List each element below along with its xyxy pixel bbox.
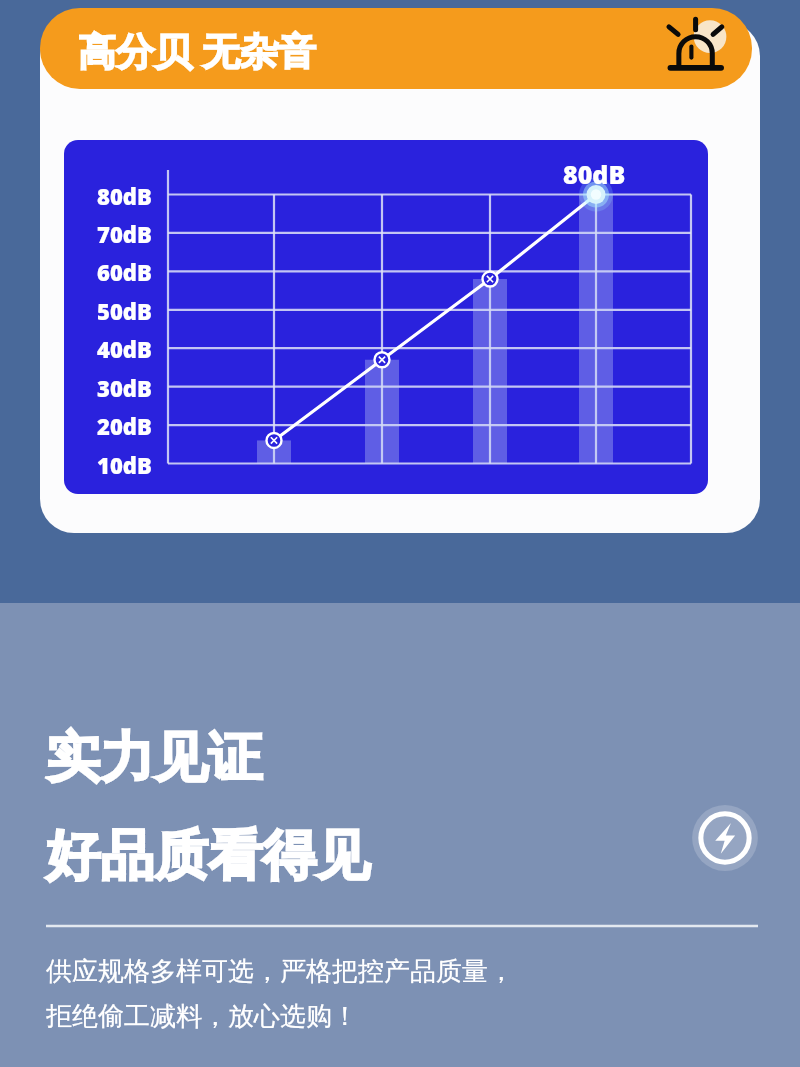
- staticText: 供应规格多样可选，严格把控产品质量，: [46, 955, 514, 988]
- button[interactable]: Quality power: [690, 803, 760, 873]
- staticText: 70dB: [97, 219, 152, 249]
- staticText: 60dB: [97, 257, 152, 287]
- staticText: 50dB: [97, 296, 152, 326]
- staticText: 拒绝偷工减料，放心选购！: [46, 1000, 358, 1033]
- staticText: 80dB: [563, 157, 626, 191]
- button[interactable]: Alarm siren: [661, 12, 737, 88]
- staticText: 80dB: [97, 181, 152, 211]
- staticText: 20dB: [97, 411, 152, 441]
- button[interactable]: 高分贝 无杂音: [40, 8, 752, 89]
- staticText: 实力见证: [46, 724, 262, 792]
- staticText: 好品质看得见: [46, 822, 370, 890]
- staticText: 40dB: [97, 334, 152, 364]
- staticText: 高分贝 无杂音: [78, 24, 316, 76]
- staticText: 30dB: [97, 373, 152, 403]
- staticText: 10dB: [97, 450, 152, 480]
